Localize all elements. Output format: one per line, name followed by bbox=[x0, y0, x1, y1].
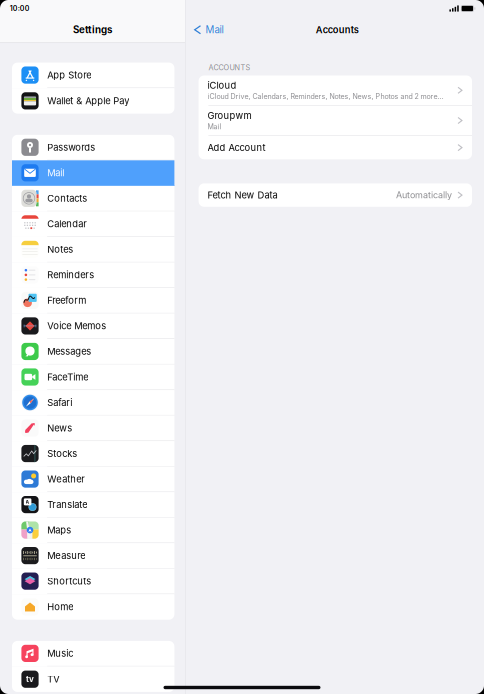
staticText: iCloud bbox=[208, 80, 237, 91]
button[interactable]: Stocks bbox=[12, 441, 174, 467]
staticText: Voice Memos bbox=[47, 320, 106, 332]
staticText: Add Account bbox=[208, 142, 266, 153]
staticText: Safari bbox=[47, 397, 72, 408]
staticText: Passwords bbox=[47, 142, 95, 153]
button[interactable]: Home bbox=[12, 594, 174, 620]
staticText: Accounts bbox=[316, 24, 359, 35]
button[interactable]: A bbox=[12, 492, 174, 518]
button[interactable]: Music bbox=[12, 641, 174, 666]
button[interactable]: Messages bbox=[12, 339, 174, 364]
staticText: Home bbox=[47, 601, 73, 613]
button[interactable]: Groupwm bbox=[199, 106, 472, 135]
button[interactable]: Maps bbox=[12, 518, 174, 543]
button[interactable]: Calendar bbox=[12, 211, 174, 237]
staticText: App Store bbox=[47, 69, 91, 81]
staticText: TV bbox=[47, 674, 59, 685]
staticText: News bbox=[47, 422, 72, 434]
staticText: Shortcuts bbox=[47, 575, 91, 587]
staticText: Reminders bbox=[47, 269, 94, 281]
staticText: Translate bbox=[47, 499, 87, 510]
staticText: Measure bbox=[47, 550, 85, 561]
staticText: Groupwm bbox=[208, 110, 252, 121]
staticText: A bbox=[26, 499, 30, 505]
staticText: Fetch New Data bbox=[208, 189, 278, 201]
button[interactable]: tv bbox=[12, 666, 174, 692]
button[interactable]: App Store bbox=[12, 63, 174, 88]
button[interactable]: Weather bbox=[12, 467, 174, 492]
button[interactable]: Freeform bbox=[12, 288, 174, 313]
staticText: 10:00 bbox=[10, 4, 30, 13]
staticText: Freeform bbox=[47, 295, 86, 306]
staticText: Maps bbox=[47, 524, 71, 536]
staticText: Mail bbox=[208, 122, 222, 131]
staticText: iCloud Drive, Calendars, Reminders, Note… bbox=[208, 92, 444, 101]
button[interactable]: Wallet & Apple Pay bbox=[12, 88, 174, 114]
button[interactable]: Fetch New Data bbox=[199, 183, 472, 207]
staticText: Wallet & Apple Pay bbox=[47, 95, 129, 106]
staticText: FaceTime bbox=[47, 371, 88, 383]
button[interactable]: News bbox=[12, 416, 174, 441]
staticText: Automatically bbox=[396, 190, 452, 200]
button[interactable]: Safari bbox=[12, 390, 174, 415]
button[interactable]: Reminders bbox=[12, 262, 174, 288]
staticText: Mail bbox=[205, 24, 223, 36]
staticText: Messages bbox=[47, 346, 91, 357]
button[interactable]: Voice Memos bbox=[12, 313, 174, 339]
staticText: Calendar bbox=[47, 218, 87, 229]
button[interactable]: Passwords bbox=[12, 135, 174, 160]
staticText: Weather bbox=[47, 473, 85, 485]
staticText: Stocks bbox=[47, 448, 77, 459]
staticText: Mail bbox=[47, 167, 64, 178]
button[interactable]: FaceTime bbox=[12, 364, 174, 390]
staticText: Notes bbox=[47, 244, 73, 255]
button[interactable]: Mail bbox=[12, 160, 174, 186]
button[interactable]: iCloud bbox=[199, 75, 472, 105]
button[interactable]: Shortcuts bbox=[12, 569, 174, 594]
staticText: Music bbox=[47, 648, 73, 659]
button[interactable]: Notes bbox=[12, 237, 174, 262]
staticText: Settings bbox=[73, 24, 112, 36]
staticText: ACCOUNTS bbox=[208, 63, 250, 72]
button[interactable]: Mail bbox=[186, 19, 223, 41]
button[interactable]: Contacts bbox=[12, 186, 174, 211]
button[interactable]: Measure bbox=[12, 543, 174, 569]
staticText: tv bbox=[26, 674, 34, 684]
staticText: Contacts bbox=[47, 193, 87, 204]
button[interactable]: Add Account bbox=[199, 136, 472, 159]
